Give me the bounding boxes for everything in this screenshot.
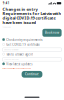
staticText: Talk to a travel agent [6,53,33,56]
button[interactable]: Book now [42,29,62,37]
staticText: 9:41 [3,1,10,5]
staticText: Get COVID-19 certificate [6,43,40,46]
staticText: Rules change often — check before you fl… [2,68,31,69]
staticText: Type your message [4,58,19,60]
staticText: Select your destination [4,49,19,50]
button[interactable]: Select your destination [2,48,62,51]
staticText: Changes in entry Requirements for Latvia… [2,6,61,25]
button[interactable]: Type your message [2,58,62,61]
button[interactable]: View latest updates [2,62,62,66]
button[interactable]: Check entry requirements [2,38,62,42]
staticText: View latest updates [6,62,32,66]
button[interactable]: Talk to a travel agent [2,53,62,56]
staticText: Continue [25,72,39,76]
staticText: Check entry requirements [6,38,42,42]
button[interactable]: Get COVID-19 certificate [2,43,62,46]
button[interactable]: Continue [22,71,42,78]
staticText: Today 09:24 [2,26,11,28]
staticText: Book now [45,31,59,34]
